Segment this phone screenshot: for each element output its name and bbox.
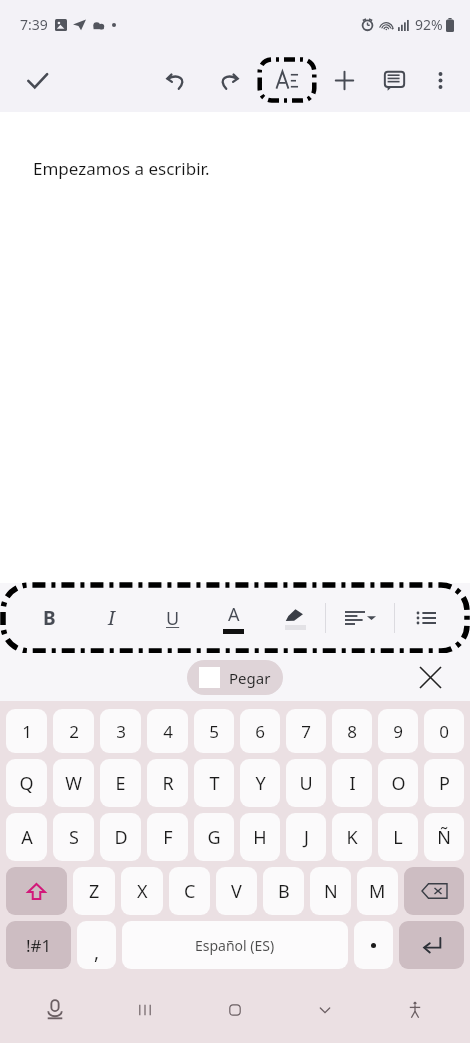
button[interactable]: C	[169, 867, 210, 915]
staticText: 0	[439, 720, 449, 743]
button[interactable]: J	[286, 813, 326, 861]
staticText: 8	[347, 720, 357, 743]
staticText: 9	[393, 720, 403, 743]
staticText: 6	[255, 720, 265, 743]
button[interactable]: U	[286, 759, 326, 807]
button[interactable]: Space	[122, 921, 348, 969]
button[interactable]: Comments	[372, 58, 416, 102]
staticText: M	[369, 879, 386, 904]
staticText: A	[228, 602, 240, 627]
staticText: I	[108, 605, 115, 631]
staticText: Y	[255, 771, 266, 796]
staticText: 7	[301, 720, 311, 743]
button[interactable]: E	[100, 759, 141, 807]
staticText: A	[21, 825, 33, 850]
button[interactable]: 4	[147, 709, 188, 753]
button[interactable]: W	[53, 759, 94, 807]
staticText: G	[207, 825, 221, 850]
staticText: C	[184, 879, 196, 904]
staticText: P	[439, 771, 450, 796]
button[interactable]: 1	[6, 709, 47, 753]
button[interactable]: Q	[6, 759, 47, 807]
staticText: ,	[94, 939, 100, 965]
button[interactable]: Shift	[6, 867, 67, 915]
staticText: H	[253, 825, 267, 850]
button[interactable]: N	[310, 867, 351, 915]
staticText: 4	[163, 720, 173, 743]
button[interactable]: Hide keyboard	[280, 977, 370, 1043]
button[interactable]: F	[147, 813, 188, 861]
button[interactable]: Backspace	[404, 867, 464, 915]
staticText: B	[43, 605, 56, 631]
button[interactable]: 2	[53, 709, 94, 753]
button[interactable]: V	[216, 867, 257, 915]
staticText: R	[162, 771, 174, 796]
button[interactable]: L	[378, 813, 418, 861]
button[interactable]: R	[147, 759, 188, 807]
staticText: O	[391, 771, 406, 796]
button[interactable]: Pegar	[187, 660, 283, 695]
staticText: 5	[209, 720, 219, 743]
button[interactable]: Italic	[80, 583, 142, 653]
button[interactable]: Text color	[203, 583, 264, 653]
button[interactable]: 6	[240, 709, 280, 753]
button[interactable]: Redo	[206, 58, 250, 102]
button[interactable]: Text formatting	[256, 55, 318, 105]
button[interactable]: Insert	[322, 58, 366, 102]
staticText: T	[209, 771, 220, 796]
button[interactable]: Z	[73, 867, 115, 915]
button[interactable]: Recents	[100, 977, 190, 1043]
button[interactable]: X	[121, 867, 163, 915]
button[interactable]: 0	[424, 709, 464, 753]
button[interactable]: B	[263, 867, 304, 915]
button[interactable]: Alignment	[326, 583, 394, 653]
staticText: S	[69, 825, 79, 850]
button[interactable]: Y	[240, 759, 280, 807]
button[interactable]: Close	[412, 659, 448, 695]
button[interactable]: Voice input	[10, 977, 100, 1043]
staticText: N	[324, 879, 338, 904]
button[interactable]: H	[240, 813, 280, 861]
staticText: U	[166, 606, 180, 631]
button[interactable]: Underline	[142, 583, 203, 653]
button[interactable]: Comma	[77, 921, 116, 969]
staticText: 2	[69, 720, 79, 743]
staticText: X	[137, 879, 148, 904]
staticText: U	[299, 771, 313, 796]
staticText: F	[163, 825, 173, 850]
staticText: W	[65, 771, 82, 796]
staticText: D	[114, 825, 128, 850]
button[interactable]: 3	[100, 709, 141, 753]
button[interactable]: M	[357, 867, 398, 915]
staticText: B	[278, 879, 290, 904]
button[interactable]: Bulleted list	[395, 583, 456, 653]
button[interactable]: Symbols	[6, 921, 71, 969]
button[interactable]: Bold	[18, 583, 80, 653]
button[interactable]: P	[424, 759, 464, 807]
button[interactable]: K	[332, 813, 372, 861]
button[interactable]: 7	[286, 709, 326, 753]
button[interactable]: G	[194, 813, 234, 861]
button[interactable]: 8	[332, 709, 372, 753]
staticText: Pegar	[229, 668, 271, 688]
button[interactable]: S	[53, 813, 94, 861]
button[interactable]: Accessibility	[370, 977, 460, 1043]
button[interactable]: Home	[190, 977, 280, 1043]
button[interactable]: T	[194, 759, 234, 807]
button[interactable]: Undo	[154, 58, 198, 102]
button[interactable]: Enter	[399, 921, 464, 969]
button[interactable]: Ñ	[424, 813, 464, 861]
button[interactable]: Done	[14, 57, 60, 103]
button[interactable]: More options	[418, 58, 462, 102]
staticText: I	[349, 771, 356, 796]
button[interactable]: 9	[378, 709, 418, 753]
button[interactable]: Highlight	[264, 583, 325, 653]
button[interactable]: Period	[354, 921, 393, 969]
button[interactable]: 5	[194, 709, 234, 753]
staticText: 92%	[415, 15, 443, 34]
button[interactable]: O	[378, 759, 418, 807]
button[interactable]: D	[100, 813, 141, 861]
button[interactable]: A	[6, 813, 47, 861]
button[interactable]: I	[332, 759, 372, 807]
staticText: V	[231, 879, 242, 904]
